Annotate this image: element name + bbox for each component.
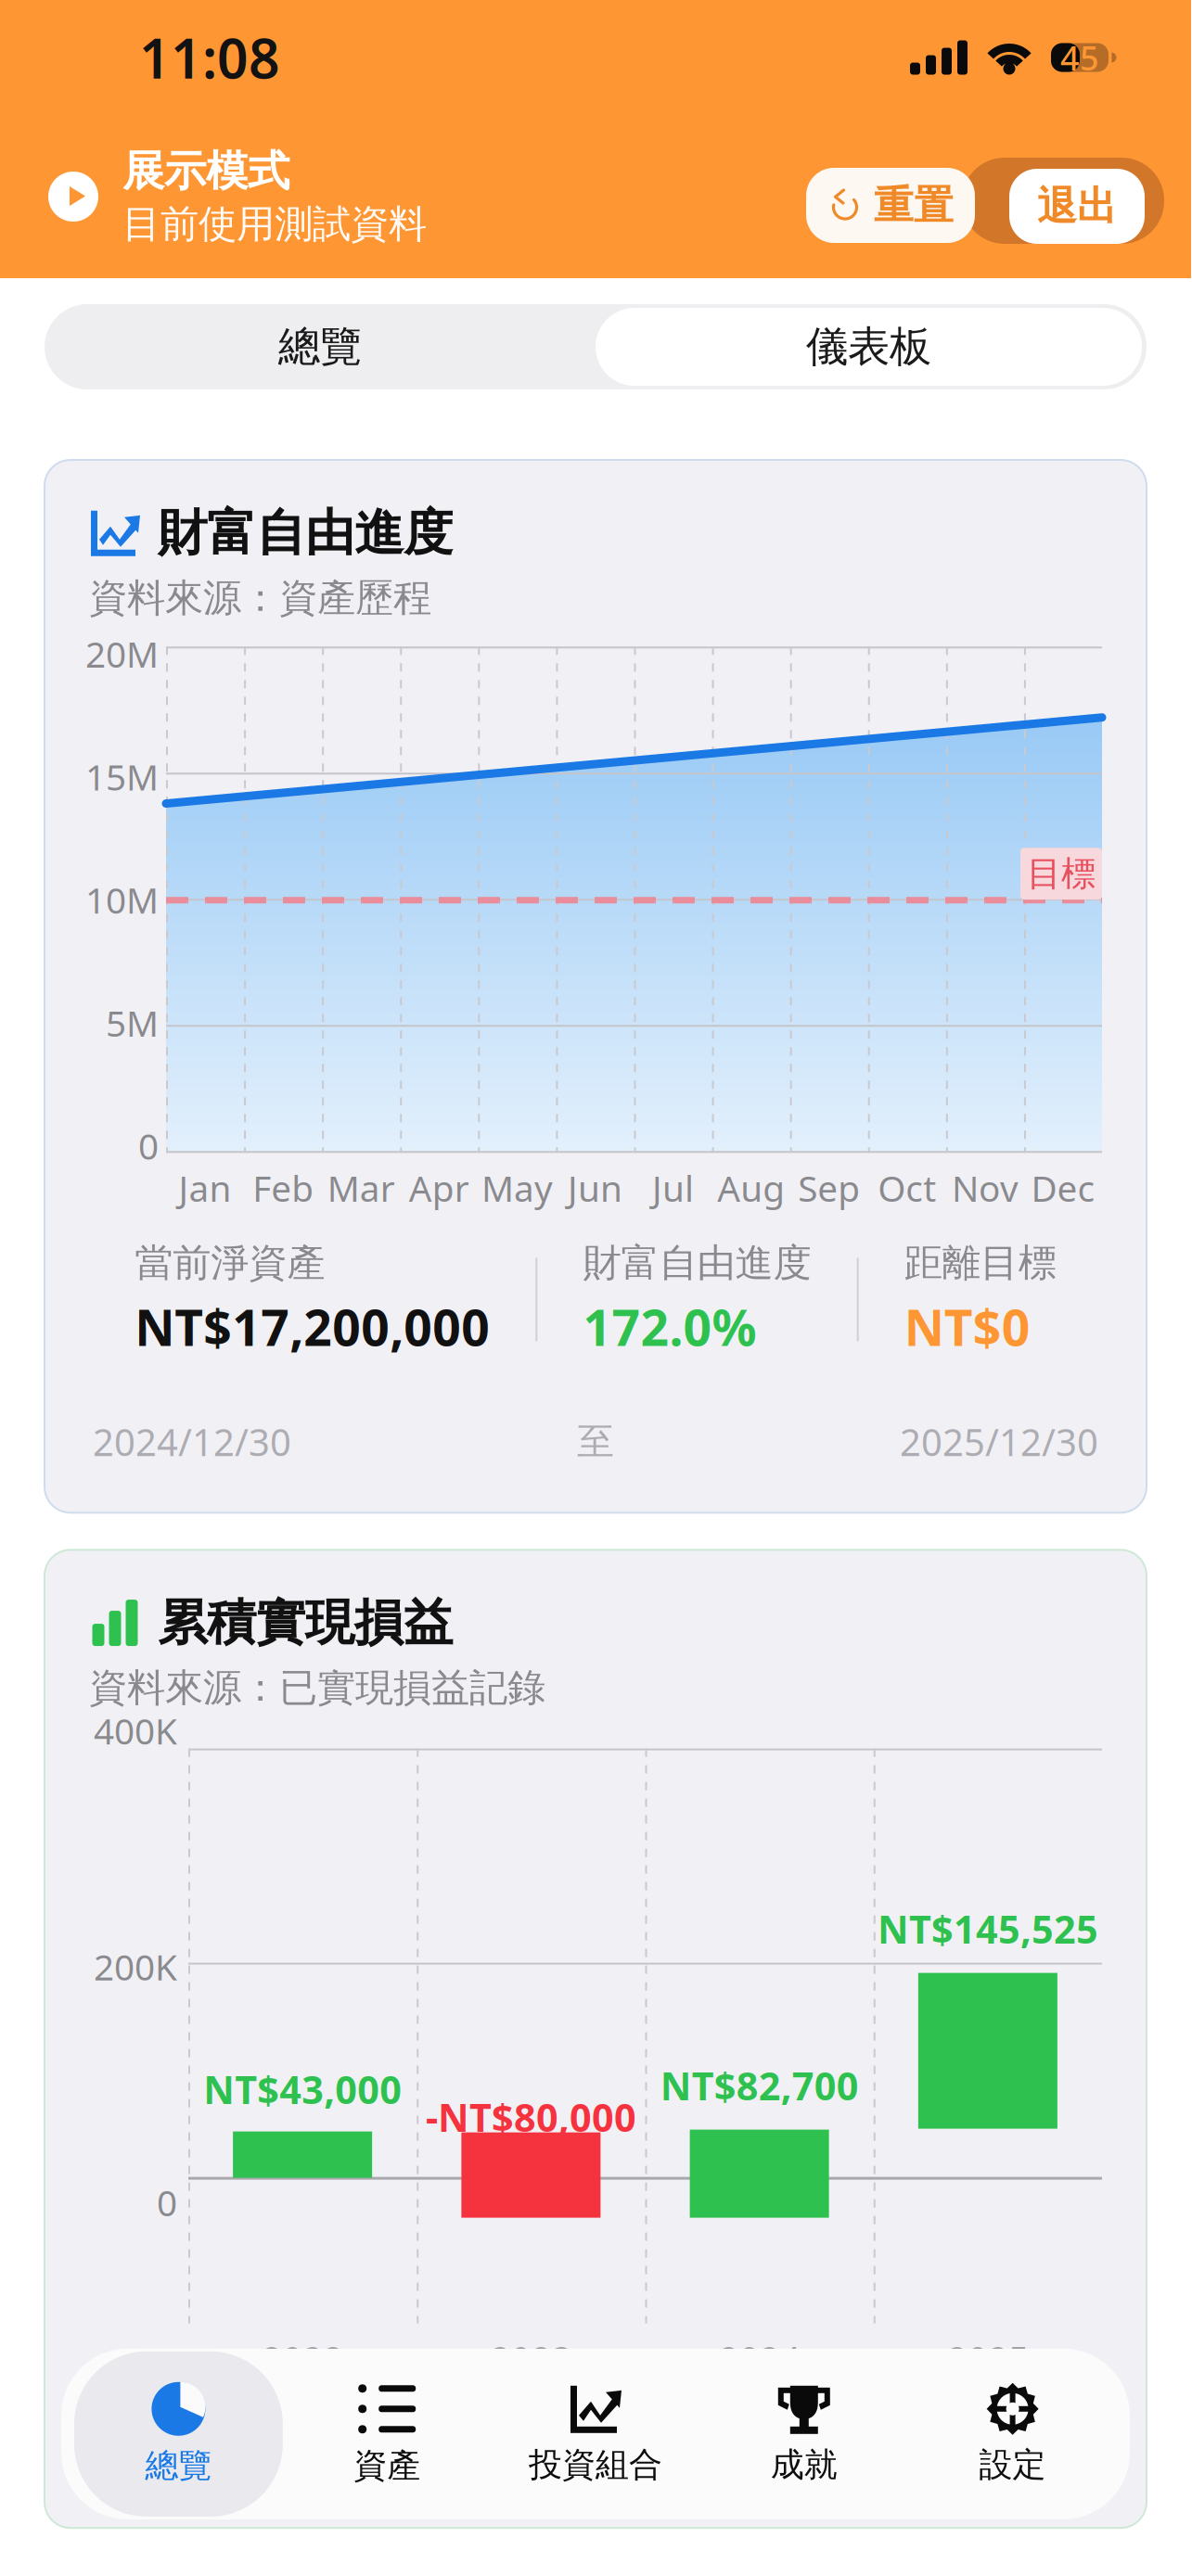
button[interactable]: 總覽 bbox=[74, 2351, 283, 2517]
staticText: 45 bbox=[1060, 35, 1099, 80]
button[interactable]: 退出 bbox=[1009, 169, 1145, 244]
staticText: 11:08 bbox=[139, 21, 280, 94]
staticText: Nov bbox=[952, 1164, 1018, 1212]
staticText: NT$145,525 bbox=[877, 1903, 1098, 1954]
staticText: 10M bbox=[85, 876, 159, 923]
staticText: 總覽 bbox=[145, 2445, 212, 2486]
staticText: 累積實現損益 bbox=[158, 1592, 453, 1653]
staticText: Jun bbox=[568, 1164, 622, 1212]
button[interactable]: 設定 bbox=[908, 2352, 1117, 2516]
staticText: Oct bbox=[878, 1164, 936, 1212]
staticText: 至 bbox=[577, 1419, 614, 1464]
staticText: Jan bbox=[179, 1164, 231, 1212]
staticText: Mar bbox=[327, 1164, 395, 1212]
staticText: 172.0% bbox=[583, 1294, 756, 1360]
staticText: 3 bbox=[585, 2431, 614, 2496]
staticText: 成就 bbox=[771, 2444, 837, 2485]
staticText: 5M bbox=[106, 999, 159, 1047]
staticText: May bbox=[481, 1164, 553, 1212]
staticText: NT$191,225 bbox=[159, 2431, 443, 2496]
button[interactable]: 資產 bbox=[283, 2351, 491, 2517]
staticText: 重置 bbox=[874, 181, 954, 230]
staticText: NT$0 bbox=[904, 1294, 1030, 1360]
staticText: 展示模式 bbox=[122, 145, 289, 197]
staticText: NT$82,700 bbox=[660, 2060, 859, 2111]
staticText: Dec bbox=[1031, 1164, 1095, 1212]
staticText: 距離目標 bbox=[904, 1239, 1056, 1287]
staticText: 2022 bbox=[262, 2335, 343, 2382]
staticText: 儀表板 bbox=[806, 321, 931, 373]
staticText: 2023 bbox=[490, 2335, 572, 2382]
staticText: Jul bbox=[652, 1164, 694, 1212]
staticText: 資料來源：已實現損益記錄 bbox=[89, 1664, 545, 1711]
staticText: 當前淨資產 bbox=[135, 1239, 325, 1287]
staticText: 退出 bbox=[1037, 182, 1117, 231]
staticText: 2025/12/30 bbox=[900, 1417, 1098, 1466]
staticText: 200K bbox=[94, 1943, 177, 1990]
staticText: Apr bbox=[409, 1164, 469, 1212]
staticText: 目前使用測試資料 bbox=[122, 201, 427, 248]
button[interactable]: 成就 bbox=[700, 2352, 908, 2516]
staticText: 20M bbox=[85, 630, 159, 677]
staticText: 總覽 bbox=[278, 321, 362, 373]
staticText: 獲利年度 bbox=[585, 2376, 737, 2423]
staticText: NT$17,200,000 bbox=[135, 1294, 490, 1360]
button[interactable]: 儀表板 bbox=[596, 308, 1147, 386]
staticText: 2024/12/30 bbox=[93, 1417, 291, 1466]
staticText: 目標 bbox=[1027, 852, 1096, 895]
button[interactable]: 投資組合 bbox=[491, 2352, 700, 2516]
staticText: 15M bbox=[85, 753, 159, 800]
staticText: 資產 bbox=[354, 2445, 420, 2486]
staticText: 設定 bbox=[979, 2444, 1046, 2485]
staticText: 資料來源：資產歷程 bbox=[89, 574, 431, 622]
staticText: 2025 bbox=[947, 2335, 1029, 2382]
staticText: 0 bbox=[157, 2178, 177, 2226]
staticText: 財富自由進度 bbox=[158, 503, 453, 563]
staticText: NT$43,000 bbox=[203, 2064, 402, 2115]
button[interactable]: 總覽 bbox=[45, 304, 596, 389]
button[interactable]: 重置 bbox=[806, 168, 975, 243]
staticText: 0 bbox=[138, 1122, 159, 1169]
staticText: 投資組合 bbox=[529, 2444, 662, 2485]
staticText: 累積總損益 bbox=[159, 2376, 349, 2423]
staticText: 財富自由進度 bbox=[583, 1239, 811, 1287]
staticText: Sep bbox=[798, 1164, 860, 1212]
staticText: Feb bbox=[252, 1164, 314, 1212]
staticText: -NT$80,000 bbox=[426, 2092, 636, 2142]
staticText: 2024 bbox=[719, 2335, 800, 2382]
staticText: Aug bbox=[717, 1164, 785, 1212]
staticText: 虧損年度 bbox=[880, 2376, 1032, 2423]
staticText: 400K bbox=[94, 1707, 177, 1754]
